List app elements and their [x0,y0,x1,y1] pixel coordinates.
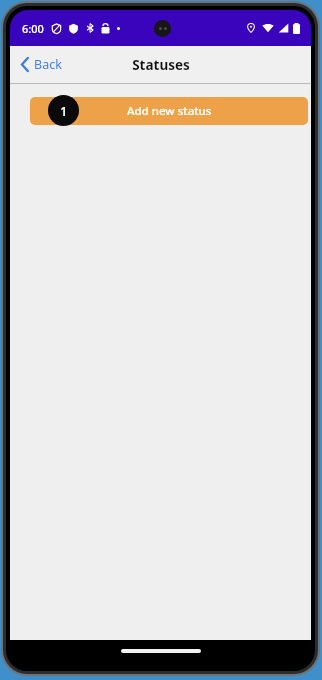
button[interactable]: Back [10,52,70,77]
staticText: 6:00 [22,21,44,36]
other: Step 1 [48,95,79,126]
staticText: Add new status [127,103,212,119]
staticText: Back [34,56,62,73]
button[interactable]: Add new status [30,97,308,125]
staticText: 1 [60,102,68,120]
staticText: Statuses [132,56,190,74]
